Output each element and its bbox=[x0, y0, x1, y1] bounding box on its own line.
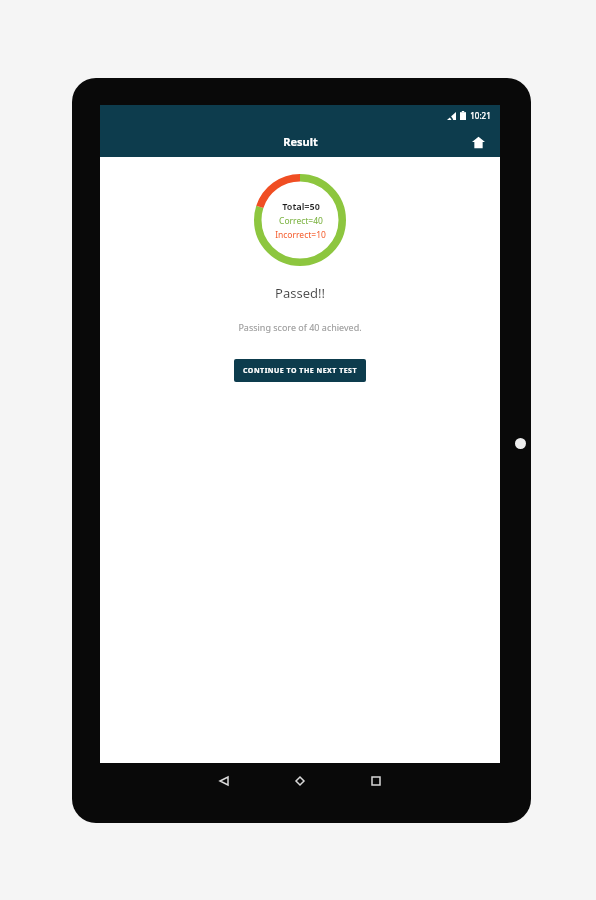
button[interactable]: CONTINUE TO THE NEXT TEST bbox=[234, 359, 366, 382]
button[interactable]: Home bbox=[465, 129, 491, 155]
staticText: Incorrect=10 bbox=[275, 229, 326, 241]
staticText: Correct=40 bbox=[279, 215, 323, 227]
staticText: Passed!! bbox=[275, 284, 325, 302]
staticText: 10:21 bbox=[470, 110, 491, 121]
staticText: Total=50 bbox=[282, 200, 320, 212]
staticText: Result bbox=[283, 134, 318, 149]
button[interactable]: Home bbox=[282, 763, 318, 799]
staticText: Passing score of 40 achieved. bbox=[238, 321, 362, 333]
staticText: CONTINUE TO THE NEXT TEST bbox=[243, 366, 357, 376]
button[interactable]: Back bbox=[206, 763, 242, 799]
button[interactable]: Recent apps bbox=[358, 763, 394, 799]
